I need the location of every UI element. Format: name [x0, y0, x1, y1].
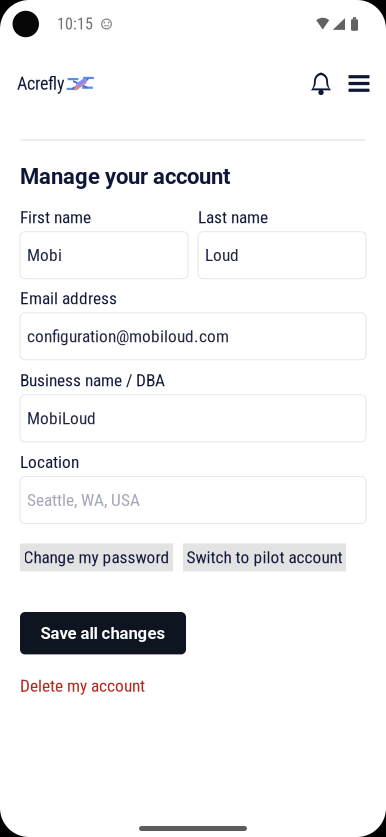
button[interactable]: Switch to pilot account [183, 543, 346, 571]
staticText: Loud [205, 245, 239, 265]
staticText: Email address [20, 288, 117, 308]
staticText: Acrefly [17, 73, 64, 94]
button[interactable]: Delete my account [20, 676, 145, 696]
staticText: Delete my account [20, 676, 145, 696]
staticText: Last name [198, 207, 268, 227]
staticText: Seattle, WA, USA [27, 490, 140, 510]
staticText: configuration@mobiloud.com [27, 326, 229, 346]
button[interactable]: Save all changes [20, 612, 186, 654]
button[interactable]: Change my password [20, 543, 173, 571]
staticText: Manage your account [20, 164, 230, 189]
staticText: Switch to pilot account [186, 547, 342, 568]
staticText: Mobi [27, 245, 62, 265]
staticText: Change my password [23, 547, 169, 568]
staticText: Save all changes [40, 623, 165, 643]
button[interactable]: Menu [331, 75, 369, 92]
staticText: First name [20, 207, 91, 227]
staticText: MobiLoud [27, 408, 96, 428]
staticText: Business name / DBA [20, 370, 165, 390]
button[interactable]: Acrefly [17, 73, 93, 94]
staticText: 10:15 [57, 15, 93, 33]
button[interactable]: Notifications [310, 72, 331, 95]
staticText: Location [20, 452, 79, 472]
